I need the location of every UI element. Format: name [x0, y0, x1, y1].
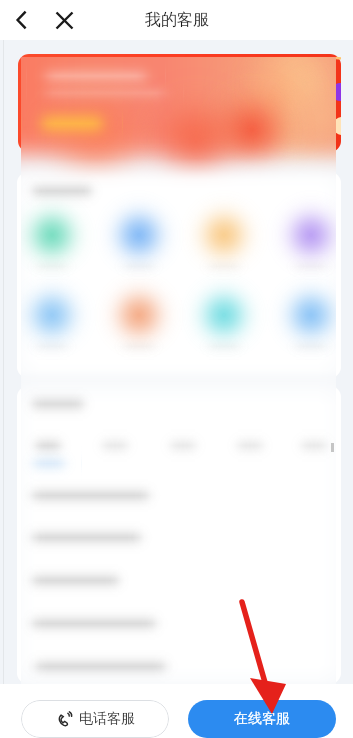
- button[interactable]: 电话客服: [21, 700, 169, 738]
- button[interactable]: Service entry: [99, 278, 179, 352]
- button[interactable]: Question: [18, 450, 339, 492]
- button[interactable]: Promotion banner: [18, 53, 339, 152]
- button[interactable]: 在线客服: [188, 700, 336, 738]
- button[interactable]: Service entry: [179, 278, 259, 352]
- button[interactable]: Question: [18, 618, 339, 660]
- button[interactable]: Category tab: [18, 408, 83, 434]
- button[interactable]: Question: [18, 576, 339, 618]
- button[interactable]: Service entry: [259, 278, 339, 352]
- button[interactable]: Service entry: [259, 204, 339, 278]
- button[interactable]: Service entry: [18, 204, 99, 278]
- button[interactable]: Service entry: [18, 278, 99, 352]
- button[interactable]: Question: [18, 534, 339, 576]
- button[interactable]: Question: [18, 492, 339, 534]
- staticText: 电话客服: [79, 710, 135, 728]
- button[interactable]: Close: [50, 6, 78, 34]
- button[interactable]: Back: [8, 6, 36, 34]
- button[interactable]: Service entry: [99, 204, 179, 278]
- button[interactable]: Service entry: [179, 204, 259, 278]
- staticText: 在线客服: [234, 710, 290, 728]
- staticText: 我的客服: [145, 10, 209, 30]
